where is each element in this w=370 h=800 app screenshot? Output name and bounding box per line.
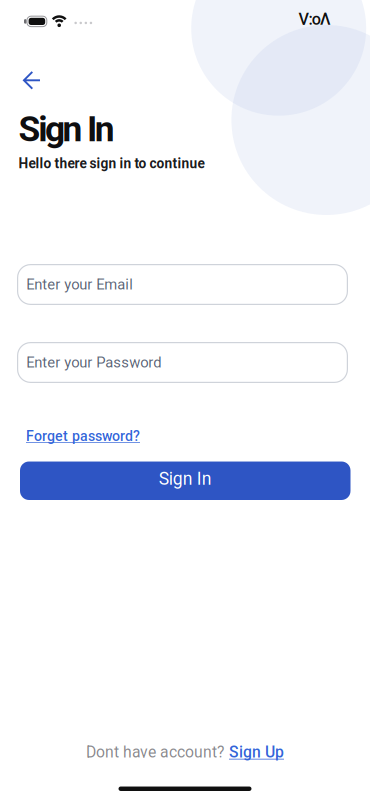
button[interactable]: Forget password? (26, 428, 140, 445)
button[interactable]: Back (18, 67, 48, 95)
staticText: Hello there sign in to continue (18, 155, 204, 172)
staticText: Sign Up (229, 743, 284, 761)
button[interactable]: Enter your Email (17, 264, 348, 305)
staticText: V:oΛ (298, 10, 331, 29)
button[interactable]: Sign Up (229, 743, 284, 761)
button[interactable]: Sign In (20, 461, 350, 500)
button[interactable]: Enter your Password (17, 342, 348, 383)
staticText: Sign In (159, 468, 212, 489)
staticText: Forget password? (26, 428, 140, 445)
staticText: Sign In (18, 108, 115, 150)
staticText: Dont have account? (86, 743, 224, 761)
staticText: Enter your Email (26, 276, 133, 293)
staticText: Enter your Password (26, 354, 161, 371)
